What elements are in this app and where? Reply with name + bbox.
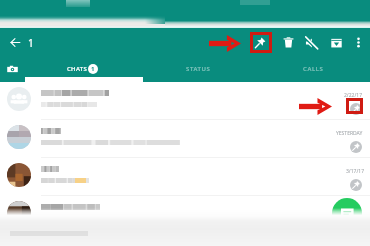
button[interactable]: New chat: [332, 198, 362, 228]
button[interactable]: Back: [9, 36, 22, 49]
button[interactable]: Camera: [7, 64, 18, 75]
button[interactable]: Mute: [304, 36, 318, 50]
staticText: CALLS: [303, 65, 324, 73]
staticText: STATUS: [186, 65, 211, 73]
staticText: 3/17/17: [346, 168, 365, 175]
staticText: CHATS: [67, 65, 87, 73]
button[interactable]: More options: [352, 36, 365, 49]
staticText: 1: [28, 36, 34, 50]
staticText: 1: [91, 65, 95, 73]
staticText: 2/22/17: [344, 92, 363, 99]
button[interactable]: Archive: [330, 36, 343, 49]
button[interactable]: Pin: [253, 36, 267, 50]
button[interactable]: 3/17/17: [0, 158, 370, 196]
button[interactable]: Delete: [282, 36, 295, 49]
button[interactable]: [0, 196, 370, 234]
button[interactable]: YESTERDAY: [0, 120, 370, 158]
button[interactable]: 2/22/17: [0, 82, 370, 120]
staticText: YESTERDAY: [336, 130, 363, 137]
